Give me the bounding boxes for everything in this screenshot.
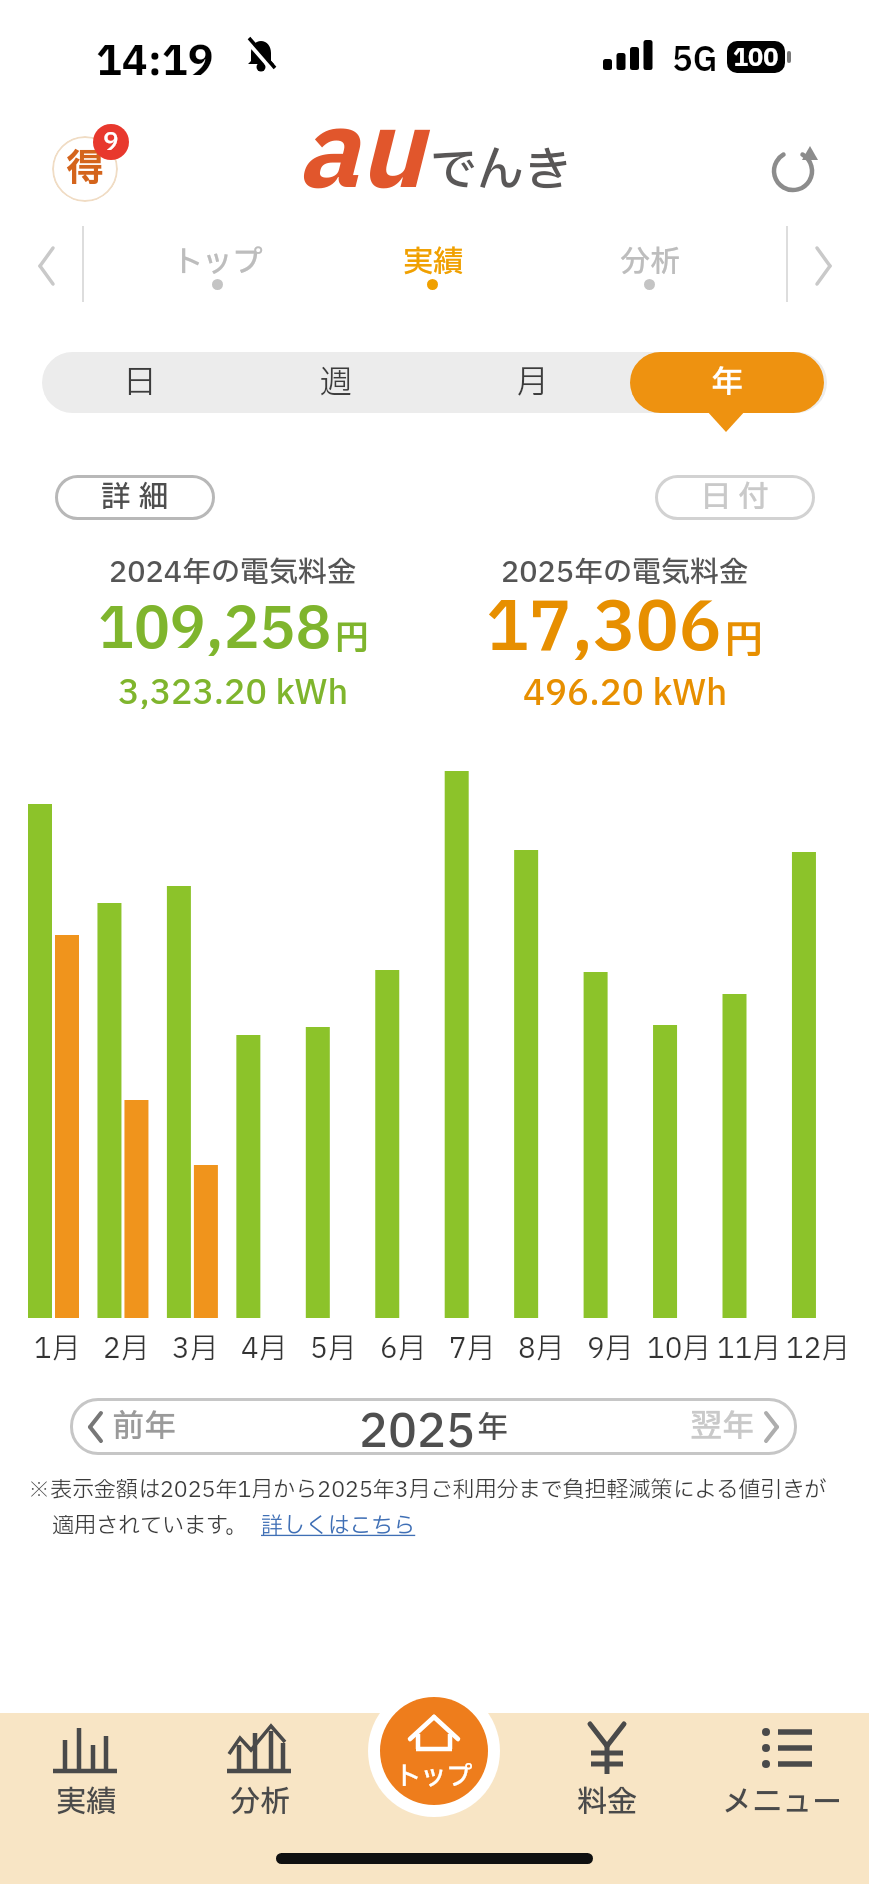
- staticText: 5月: [310, 1328, 356, 1370]
- staticText: 3,323.20 kWh: [118, 668, 349, 719]
- staticText: トップ: [173, 240, 263, 285]
- button[interactable]: 翌年: [690, 1403, 781, 1451]
- button[interactable]: 前年: [86, 1403, 177, 1451]
- staticText: 得: [66, 141, 105, 198]
- button[interactable]: メニュー: [707, 1716, 857, 1816]
- staticText: 年: [477, 1405, 508, 1451]
- button[interactable]: 詳しくはこちら: [261, 1510, 416, 1543]
- staticText: 日: [124, 359, 157, 407]
- button[interactable]: トップ: [68, 240, 368, 285]
- staticText: トップ: [395, 1757, 473, 1796]
- button[interactable]: 週: [238, 352, 434, 413]
- staticText: 12月: [786, 1328, 850, 1370]
- button[interactable]: 日: [42, 352, 238, 413]
- staticText: 月: [516, 359, 549, 407]
- staticText: 翌年: [690, 1403, 755, 1451]
- staticText: 分析: [230, 1780, 290, 1825]
- staticText: 9月: [587, 1328, 633, 1370]
- staticText: 109,258: [98, 588, 332, 673]
- staticText: 1月: [34, 1328, 80, 1370]
- staticText: 5G: [672, 36, 718, 85]
- staticText: でんき: [430, 136, 571, 206]
- button[interactable]: 実績: [11, 1716, 161, 1816]
- button[interactable]: 詳 細: [55, 475, 215, 520]
- staticText: 2月: [103, 1328, 149, 1370]
- staticText: 2025年の電気料金: [501, 551, 749, 594]
- button[interactable]: 分析: [500, 240, 800, 285]
- button[interactable]: 実績: [283, 240, 583, 285]
- staticText: 円: [335, 614, 369, 665]
- staticText: 円: [725, 613, 764, 670]
- staticText: 実績: [56, 1780, 116, 1825]
- button[interactable]: [630, 352, 824, 413]
- staticText: メニュー: [722, 1780, 842, 1825]
- staticText: 2025: [359, 1398, 475, 1455]
- button[interactable]: 分析: [185, 1716, 335, 1816]
- staticText: 年: [711, 359, 744, 407]
- staticText: 6月: [380, 1328, 426, 1370]
- staticText: 日 付: [701, 475, 769, 520]
- staticText: 4月: [241, 1328, 287, 1370]
- staticText: 17,306: [486, 578, 722, 680]
- button[interactable]: 料金: [532, 1716, 682, 1816]
- staticText: 9: [103, 124, 119, 160]
- button[interactable]: 得: [52, 136, 120, 204]
- staticText: 100: [733, 41, 779, 73]
- staticText: 14:19: [96, 32, 214, 93]
- staticText: 496.20 kWh: [523, 668, 728, 720]
- staticText: 2024年の電気料金: [109, 551, 357, 594]
- staticText: 10月: [647, 1328, 711, 1370]
- staticText: 実績: [403, 240, 463, 285]
- staticText: 8月: [518, 1328, 564, 1370]
- button[interactable]: [770, 146, 818, 194]
- button[interactable]: トップ: [380, 1697, 488, 1805]
- staticText: au: [297, 77, 424, 233]
- staticText: 3月: [172, 1328, 218, 1370]
- button[interactable]: 日 付: [655, 475, 815, 520]
- button[interactable]: 月: [434, 352, 630, 413]
- staticText: 詳 細: [101, 475, 169, 520]
- staticText: 適用されています。: [52, 1510, 247, 1543]
- staticText: 7月: [449, 1328, 495, 1370]
- staticText: 料金: [577, 1780, 637, 1825]
- staticText: 分析: [620, 240, 680, 285]
- staticText: ※表示金額は2025年1月から2025年3月ご利用分まで負担軽減策による値引きが: [28, 1474, 827, 1507]
- staticText: 週: [320, 359, 353, 407]
- staticText: 11月: [717, 1328, 781, 1370]
- staticText: 前年: [112, 1403, 177, 1451]
